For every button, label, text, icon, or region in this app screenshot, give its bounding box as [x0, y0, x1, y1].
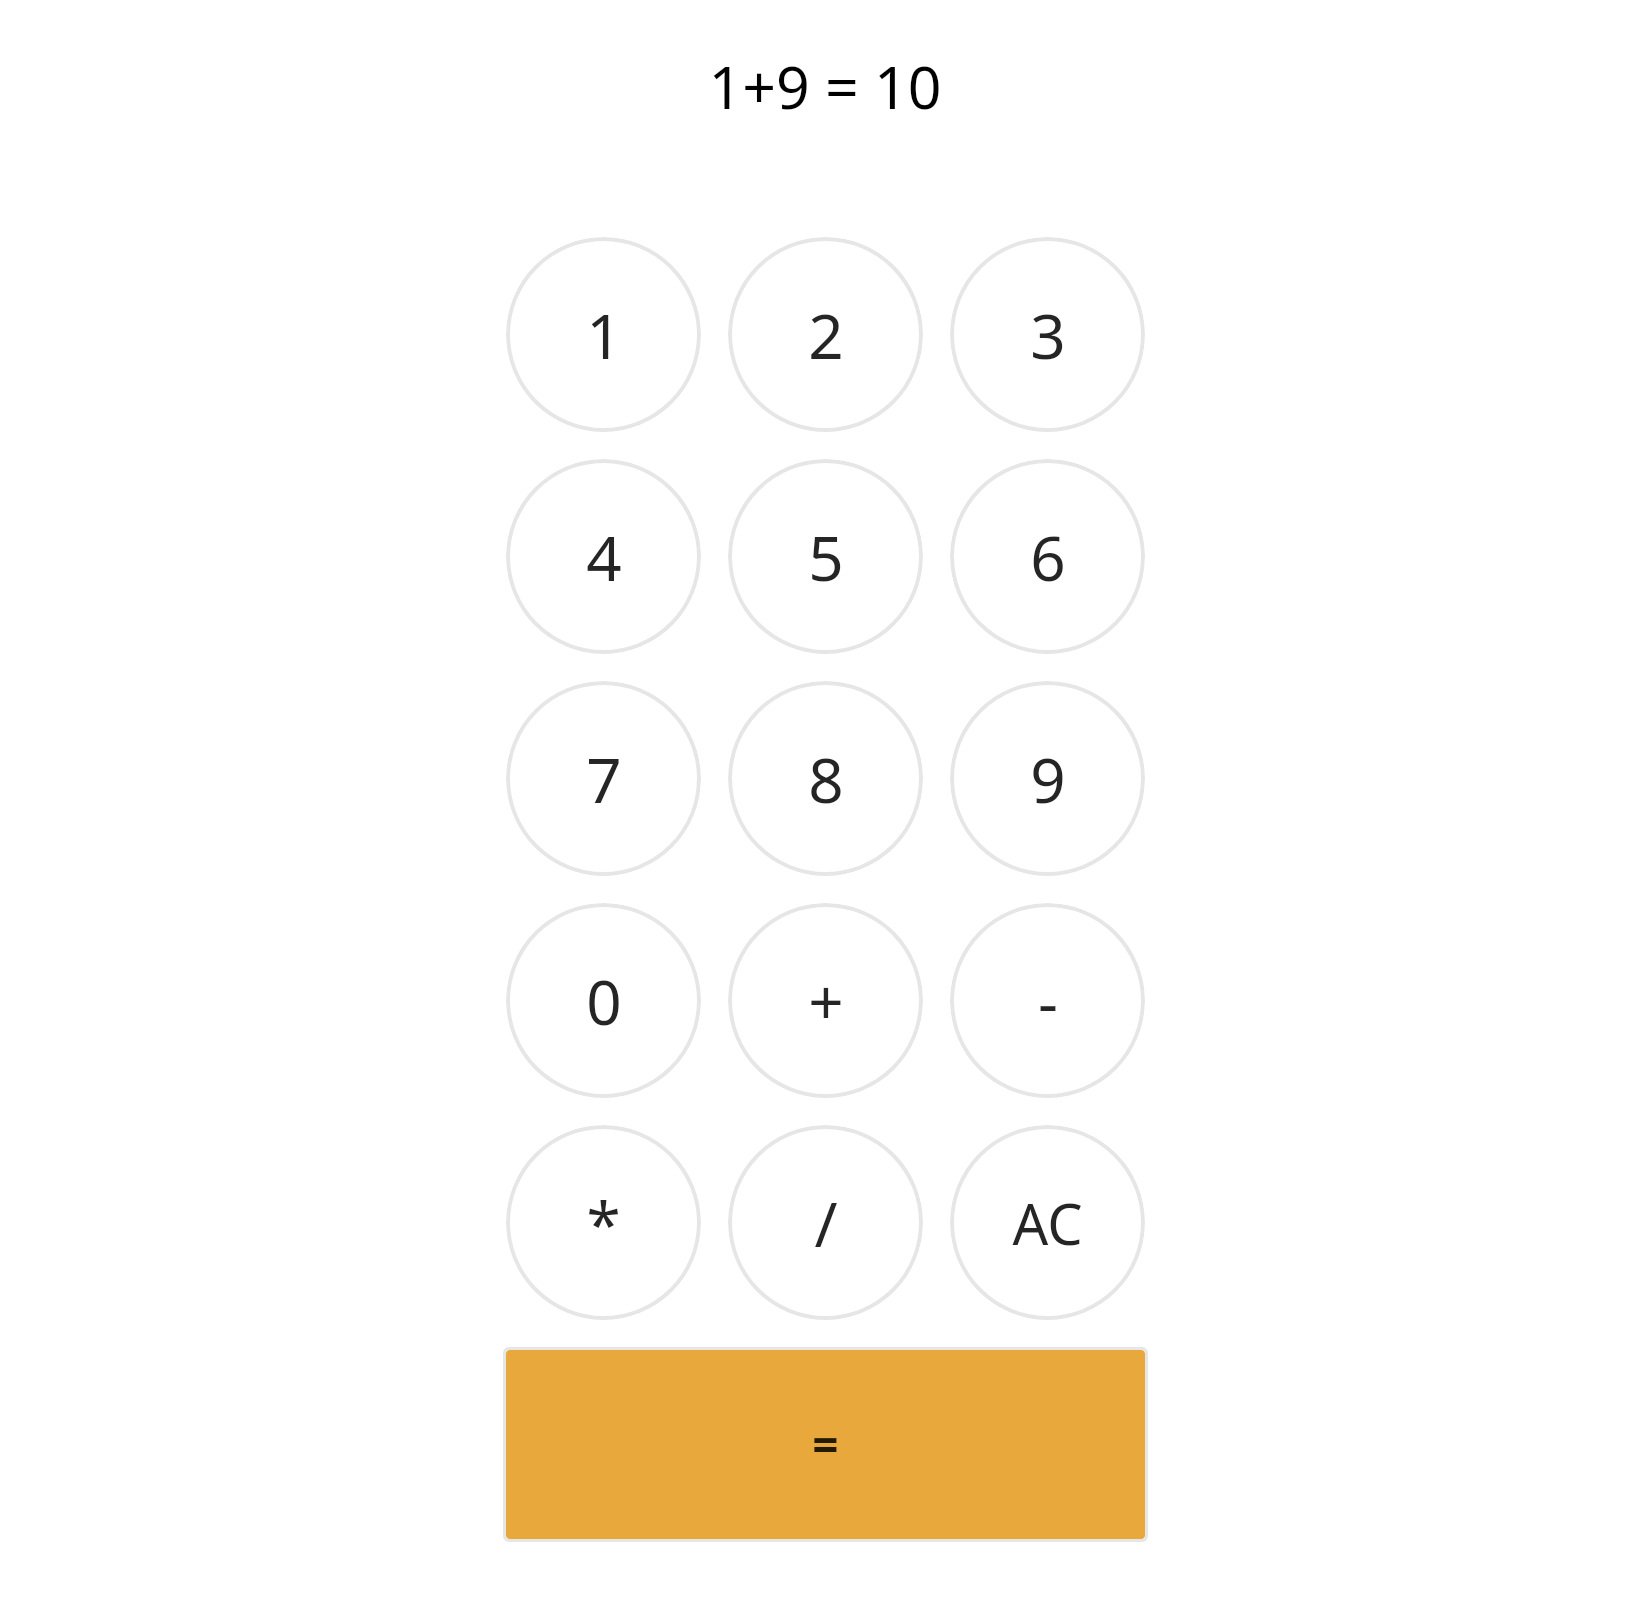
button[interactable]: - [950, 903, 1145, 1098]
staticText: 6 [1030, 515, 1066, 599]
staticText: 1 [586, 293, 622, 377]
staticText: 8 [808, 737, 844, 821]
button[interactable]: 7 [506, 681, 701, 876]
staticText: 2 [808, 293, 844, 377]
button[interactable]: 1 [506, 237, 701, 432]
button[interactable]: * [506, 1125, 701, 1320]
staticText: 1+9 = 10 [708, 46, 942, 126]
staticText: 9 [1030, 737, 1066, 821]
button[interactable]: 3 [950, 237, 1145, 432]
button[interactable]: = [506, 1350, 1145, 1539]
staticText: 4 [586, 515, 622, 599]
staticText: 5 [808, 515, 844, 599]
button[interactable]: 8 [728, 681, 923, 876]
staticText: 0 [586, 959, 622, 1043]
button[interactable]: + [728, 903, 923, 1098]
button[interactable]: 2 [728, 237, 923, 432]
staticText: 3 [1030, 293, 1066, 377]
staticText: / [814, 1181, 838, 1265]
staticText: + [808, 959, 844, 1043]
button[interactable]: / [728, 1125, 923, 1320]
button[interactable]: 0 [506, 903, 701, 1098]
staticText: * [586, 1181, 621, 1265]
button[interactable]: 9 [950, 681, 1145, 876]
button[interactable]: 5 [728, 459, 923, 654]
button[interactable]: 6 [950, 459, 1145, 654]
staticText: AC [1012, 1185, 1083, 1261]
button[interactable]: 4 [506, 459, 701, 654]
staticText: = [812, 1413, 839, 1476]
staticText: 7 [586, 737, 622, 821]
staticText: - [1038, 959, 1058, 1043]
button[interactable]: AC [950, 1125, 1145, 1320]
